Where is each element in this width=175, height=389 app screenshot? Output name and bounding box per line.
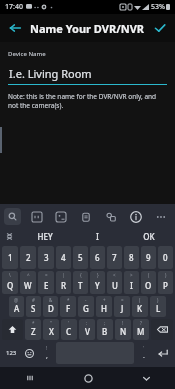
- staticText: U: [112, 280, 118, 291]
- button[interactable]: =: [38, 271, 54, 294]
- staticText: 4: [61, 252, 66, 263]
- staticText: 0: [163, 252, 168, 263]
- button[interactable]: |: [56, 271, 71, 294]
- staticText: 123: [6, 349, 17, 357]
- button[interactable]: !: [38, 342, 55, 364]
- button[interactable]: Save: [149, 17, 171, 39]
- staticText: R: [61, 280, 67, 291]
- staticText: Note: this is the name for the DVR/NVR o…: [8, 92, 167, 110]
- staticText: 53%: [151, 2, 165, 12]
- button[interactable]: 6: [90, 246, 105, 269]
- button[interactable]: More options: [152, 208, 169, 225]
- button[interactable]: <: [107, 271, 122, 294]
- button[interactable]: (: [141, 271, 156, 294]
- button[interactable]: 2: [20, 246, 36, 269]
- staticText: M: [137, 326, 145, 337]
- staticText: ;: [104, 320, 106, 326]
- staticText: <: [113, 272, 116, 278]
- staticText: \: [9, 272, 11, 278]
- button[interactable]: #: [26, 296, 41, 317]
- button[interactable]: &: [43, 296, 58, 317]
- staticText: :: [86, 320, 88, 326]
- button[interactable]: +: [96, 296, 112, 317]
- button[interactable]: Emoji: [21, 342, 38, 364]
- button[interactable]: 1: [2, 246, 18, 269]
- button[interactable]: Info: [127, 208, 144, 225]
- staticText: OK: [143, 231, 155, 242]
- button[interactable]: {: [73, 271, 88, 294]
- button[interactable]: Back: [4, 17, 26, 39]
- staticText: C: [66, 326, 72, 337]
- button[interactable]: @: [9, 296, 24, 317]
- staticText: A: [14, 303, 20, 314]
- button[interactable]: :: [79, 319, 95, 340]
- button[interactable]: 9: [141, 246, 156, 269]
- button[interactable]: 123: [1, 342, 21, 364]
- button[interactable]: (: [132, 296, 148, 317]
- button[interactable]: *: [25, 319, 41, 340]
- staticText: +: [103, 297, 106, 303]
- button[interactable]: Search: [4, 208, 21, 225]
- button[interactable]: =: [114, 296, 130, 317]
- button[interactable]: 5: [73, 246, 88, 269]
- button[interactable]: GIF: [28, 208, 45, 225]
- staticText: {: [80, 272, 82, 278]
- button[interactable]: !: [115, 319, 131, 340]
- button[interactable]: Enter: [152, 342, 174, 364]
- staticText: #: [32, 297, 35, 303]
- button[interactable]: }: [90, 271, 105, 294]
- button[interactable]: I: [71, 228, 123, 245]
- button[interactable]: 3: [38, 246, 54, 269]
- button[interactable]: HEY: [18, 228, 71, 245]
- button[interactable]: ^: [20, 271, 36, 294]
- staticText: O: [145, 280, 152, 291]
- staticText: >: [130, 272, 133, 278]
- button[interactable]: ?: [133, 319, 149, 340]
- staticText: ': [68, 320, 70, 326]
- staticText: 3: [44, 252, 49, 263]
- button[interactable]: Translate: [102, 208, 119, 225]
- staticText: @: [14, 297, 19, 303]
- staticText: !: [122, 320, 124, 326]
- staticText: I: [130, 280, 133, 291]
- button[interactable]: ": [43, 319, 59, 340]
- staticText: Device Name: [8, 50, 46, 58]
- button[interactable]: ;: [97, 319, 113, 340]
- button[interactable]: OK: [123, 228, 175, 245]
- button[interactable]: 4: [56, 246, 71, 269]
- button[interactable]: Home: [59, 367, 117, 389]
- button[interactable]: Expand toolbar: [0, 228, 18, 245]
- staticText: (: [148, 272, 150, 278]
- staticText: 6: [95, 252, 100, 263]
- button[interactable]: I.e. Living Room: [8, 66, 167, 85]
- button[interactable]: ): [158, 271, 173, 294]
- staticText: (: [139, 297, 141, 303]
- button[interactable]: Stickers: [52, 208, 69, 225]
- staticText: !: [46, 345, 48, 351]
- button[interactable]: Hide keyboard: [117, 367, 175, 389]
- staticText: 9: [146, 252, 151, 263]
- button[interactable]: 8: [124, 246, 139, 269]
- button[interactable]: 0: [158, 246, 173, 269]
- staticText: *: [67, 297, 70, 303]
- button[interactable]: -: [78, 296, 94, 317]
- staticText: ,: [46, 351, 48, 361]
- button[interactable]: >: [124, 271, 139, 294]
- button[interactable]: ': [135, 342, 152, 364]
- button[interactable]: Backspace: [151, 319, 173, 340]
- button[interactable]: \: [2, 271, 18, 294]
- button[interactable]: Clipboard: [77, 208, 94, 225]
- button[interactable]: Shift: [2, 319, 23, 340]
- button[interactable]: *: [60, 296, 76, 317]
- button[interactable]: Recents: [0, 367, 59, 389]
- staticText: G: [83, 303, 89, 314]
- button[interactable]: ': [61, 319, 77, 340]
- button[interactable]: ): [150, 296, 166, 317]
- staticText: E: [44, 280, 49, 291]
- staticText: J: [121, 303, 124, 314]
- staticText: I: [96, 231, 99, 242]
- staticText: D: [48, 303, 54, 314]
- button[interactable]: 7: [107, 246, 122, 269]
- staticText: H: [101, 303, 107, 314]
